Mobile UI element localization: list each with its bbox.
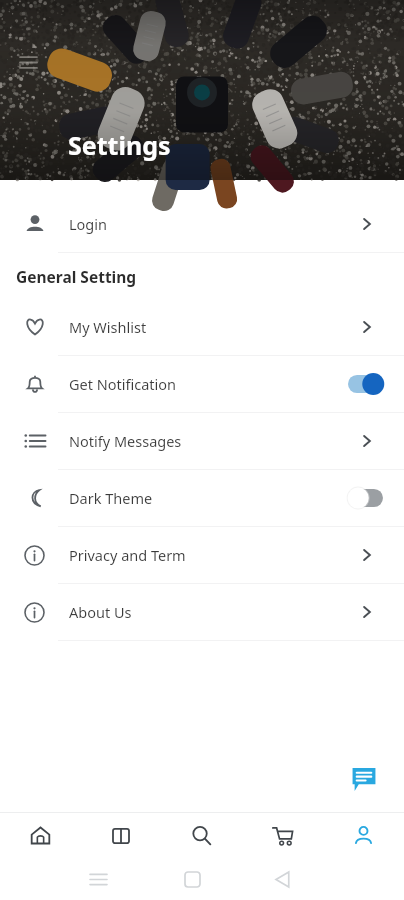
staticText: Login xyxy=(69,214,330,234)
button[interactable]: Search xyxy=(161,813,242,858)
button[interactable]: Notify Messages xyxy=(0,413,404,469)
button[interactable]: Dark Theme xyxy=(0,470,404,526)
staticText: Get Notification xyxy=(69,374,330,394)
staticText: Dark Theme xyxy=(69,488,330,508)
button[interactable]: About Us xyxy=(0,584,404,640)
button[interactable]: Catalog xyxy=(80,813,161,858)
button[interactable]: My Wishlist xyxy=(0,299,404,355)
staticText: Settings xyxy=(68,128,171,162)
staticText: Privacy and Term xyxy=(69,545,330,565)
staticText: About Us xyxy=(69,602,330,622)
button[interactable]: Chat xyxy=(336,751,392,807)
button[interactable]: Cart xyxy=(242,813,323,858)
button[interactable]: Login xyxy=(0,196,404,252)
button[interactable]: Account xyxy=(323,813,404,858)
button[interactable]: Privacy and Term xyxy=(0,527,404,583)
button[interactable]: Get Notification xyxy=(0,356,404,412)
staticText: Notify Messages xyxy=(69,431,330,451)
button[interactable]: Menu xyxy=(14,48,42,76)
staticText: General Setting xyxy=(16,266,137,287)
staticText: My Wishlist xyxy=(69,317,330,337)
button[interactable]: Home xyxy=(0,813,80,858)
